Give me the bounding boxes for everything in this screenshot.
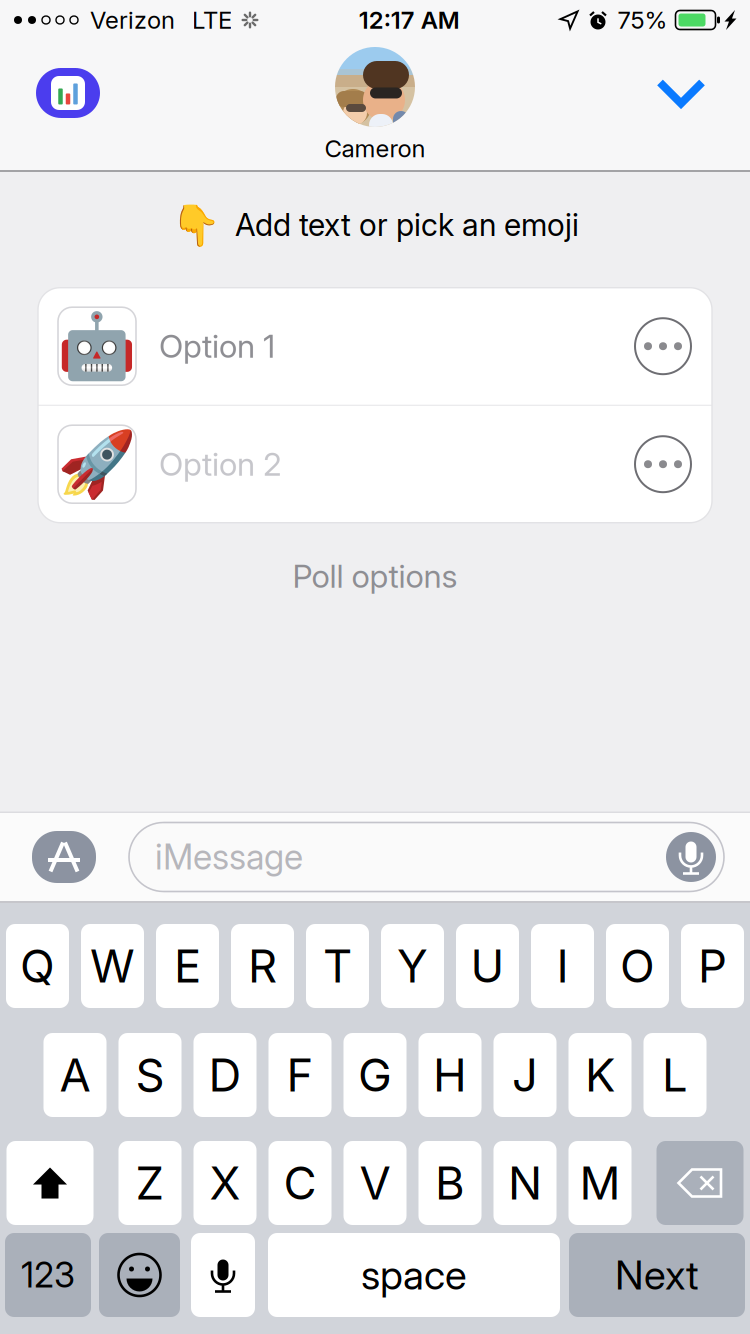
staticText: K — [585, 1048, 615, 1102]
staticText: Cameron — [324, 134, 425, 163]
staticText: O — [620, 939, 655, 993]
button[interactable]: D — [193, 1033, 256, 1117]
button[interactable]: 🤖 — [38, 288, 712, 405]
staticText: 🚀 — [57, 428, 137, 501]
button[interactable]: W — [81, 924, 144, 1008]
staticText: B — [435, 1156, 465, 1210]
button[interactable]: Z — [118, 1141, 181, 1225]
staticText: Q — [20, 939, 55, 993]
button[interactable]: R — [231, 924, 294, 1008]
staticText: Option 2 — [159, 445, 282, 483]
button[interactable]: I — [531, 924, 594, 1008]
staticText: V — [359, 1156, 390, 1210]
staticText: Option 1 — [159, 327, 275, 365]
button[interactable]: C — [268, 1141, 331, 1225]
button[interactable]: S — [118, 1033, 181, 1117]
staticText: W — [90, 939, 135, 993]
button[interactable]: O — [606, 924, 669, 1008]
staticText: I — [556, 939, 568, 993]
staticText: H — [433, 1048, 467, 1102]
staticText: Add text or pick an emoji — [235, 206, 579, 243]
staticText: S — [135, 1048, 164, 1102]
staticText: LTE — [192, 5, 232, 34]
button[interactable]: Q — [6, 924, 69, 1008]
button[interactable]: Cameron — [324, 47, 425, 163]
staticText: P — [698, 939, 727, 993]
button[interactable]: G — [343, 1033, 406, 1117]
staticText: X — [209, 1156, 240, 1210]
staticText: 👇 — [171, 202, 221, 248]
staticText: N — [508, 1156, 542, 1210]
button[interactable]: 🚀 — [38, 406, 712, 523]
button[interactable]: B — [418, 1141, 481, 1225]
button[interactable]: P — [681, 924, 744, 1008]
staticText: 123 — [21, 1254, 75, 1296]
button[interactable]: E — [156, 924, 219, 1008]
button[interactable]: Dictate — [663, 829, 719, 885]
button[interactable]: Delete — [656, 1141, 743, 1225]
button[interactable]: space — [268, 1233, 560, 1317]
button[interactable]: Next — [569, 1233, 745, 1317]
staticText: L — [662, 1048, 688, 1102]
button[interactable]: Close — [648, 68, 714, 118]
staticText: A — [59, 1048, 90, 1102]
button[interactable]: F — [268, 1033, 331, 1117]
button[interactable]: L — [643, 1033, 706, 1117]
button[interactable]: Shift — [6, 1141, 93, 1225]
staticText: 75% — [617, 5, 667, 34]
staticText: F — [286, 1048, 313, 1102]
staticText: iMessage — [155, 836, 303, 878]
button[interactable]: T — [306, 924, 369, 1008]
button[interactable]: J — [493, 1033, 556, 1117]
button[interactable]: N — [493, 1141, 556, 1225]
staticText: space — [361, 1251, 467, 1299]
staticText: Z — [135, 1156, 164, 1210]
button[interactable]: Y — [381, 924, 444, 1008]
staticText: Y — [397, 939, 428, 993]
staticText: Verizon — [90, 5, 175, 34]
staticText: M — [579, 1156, 620, 1210]
button[interactable]: App Store — [32, 831, 96, 883]
staticText: 🤖 — [57, 310, 137, 383]
button[interactable]: U — [456, 924, 519, 1008]
button[interactable]: Polls app — [36, 68, 100, 118]
button[interactable]: Dictation — [191, 1233, 255, 1317]
staticText: D — [208, 1048, 241, 1102]
staticText: J — [512, 1048, 538, 1102]
staticText: E — [174, 939, 201, 993]
staticText: Next — [615, 1251, 699, 1299]
button[interactable]: V — [343, 1141, 406, 1225]
staticText: R — [248, 939, 277, 993]
staticText: 12:17 AM — [359, 5, 460, 34]
staticText: G — [358, 1048, 392, 1102]
staticText: U — [470, 939, 504, 993]
button[interactable]: H — [418, 1033, 481, 1117]
staticText: C — [283, 1156, 316, 1210]
button[interactable]: M — [568, 1141, 631, 1225]
button[interactable]: A — [43, 1033, 106, 1117]
button[interactable]: Emoji — [99, 1233, 180, 1317]
button[interactable]: 123 — [5, 1233, 91, 1317]
button[interactable]: X — [193, 1141, 256, 1225]
staticText: Poll options — [292, 557, 457, 595]
button[interactable]: K — [568, 1033, 631, 1117]
staticText: T — [323, 939, 352, 993]
